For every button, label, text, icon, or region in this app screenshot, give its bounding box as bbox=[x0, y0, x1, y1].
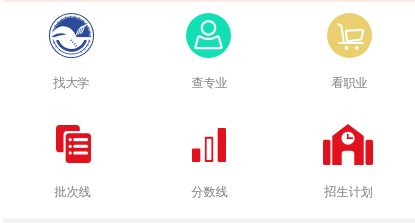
button[interactable]: 找大学 bbox=[2, 0, 140, 223]
button[interactable]: 查专业 bbox=[140, 0, 278, 223]
staticText: 分数线 bbox=[191, 184, 228, 199]
staticText: 招生计划 bbox=[324, 184, 373, 199]
staticText: 批次线 bbox=[54, 184, 91, 199]
button[interactable]: 看职业 bbox=[280, 0, 415, 223]
button[interactable]: 批次线 bbox=[3, 0, 141, 223]
button[interactable]: 招生计划 bbox=[279, 0, 415, 223]
button[interactable]: 分数线 bbox=[140, 0, 278, 223]
staticText: 找大学 bbox=[53, 75, 90, 90]
staticText: 查专业 bbox=[191, 75, 228, 90]
staticText: 看职业 bbox=[331, 75, 368, 90]
